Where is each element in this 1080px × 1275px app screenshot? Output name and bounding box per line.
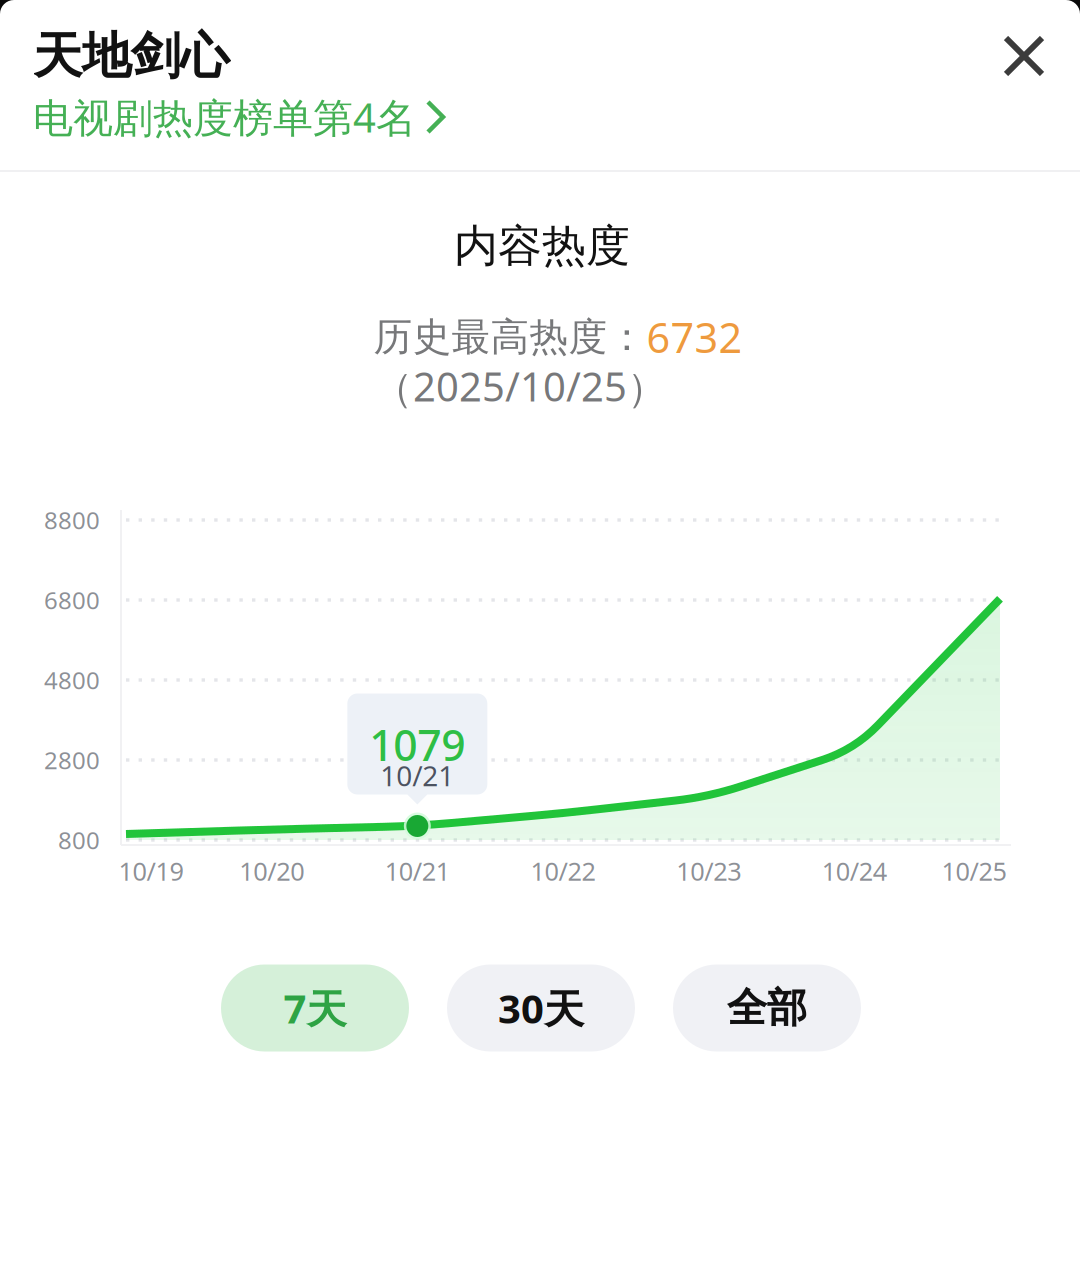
staticText: 10/23 bbox=[676, 854, 741, 888]
staticText: （2025/10/25） bbox=[373, 359, 667, 413]
button[interactable]: 全部 bbox=[673, 964, 861, 1051]
button[interactable]: 30天 bbox=[447, 964, 635, 1051]
staticText: 10/25 bbox=[941, 854, 1006, 888]
staticText: 6800 bbox=[44, 584, 100, 616]
staticText: 10/24 bbox=[822, 854, 887, 888]
staticText: 天地剑心 bbox=[33, 26, 229, 86]
staticText: 10/19 bbox=[118, 854, 183, 888]
staticText: 800 bbox=[58, 824, 100, 856]
staticText: 内容热度 bbox=[454, 219, 630, 273]
staticText: 电视剧热度榜单第4名 bbox=[33, 90, 416, 143]
button[interactable]: 7天 bbox=[221, 964, 409, 1051]
staticText: 8800 bbox=[44, 504, 100, 536]
staticText: 10/21 bbox=[385, 854, 450, 888]
staticText: 4800 bbox=[44, 664, 100, 696]
button[interactable]: Close bbox=[976, 8, 1072, 104]
button[interactable]: 电视剧热度榜单第4名 bbox=[33, 90, 473, 143]
staticText: 历史最高热度： bbox=[373, 313, 646, 361]
staticText: 30天 bbox=[498, 981, 584, 1034]
staticText: 7天 bbox=[283, 981, 346, 1034]
staticText: 10/22 bbox=[530, 854, 595, 888]
staticText: 10/21 bbox=[380, 757, 454, 794]
staticText: 全部 bbox=[727, 983, 807, 1032]
staticText: 1079 bbox=[369, 716, 465, 773]
staticText: 10/20 bbox=[239, 854, 304, 888]
staticText: 2800 bbox=[44, 744, 100, 776]
staticText: 6732 bbox=[646, 310, 742, 364]
